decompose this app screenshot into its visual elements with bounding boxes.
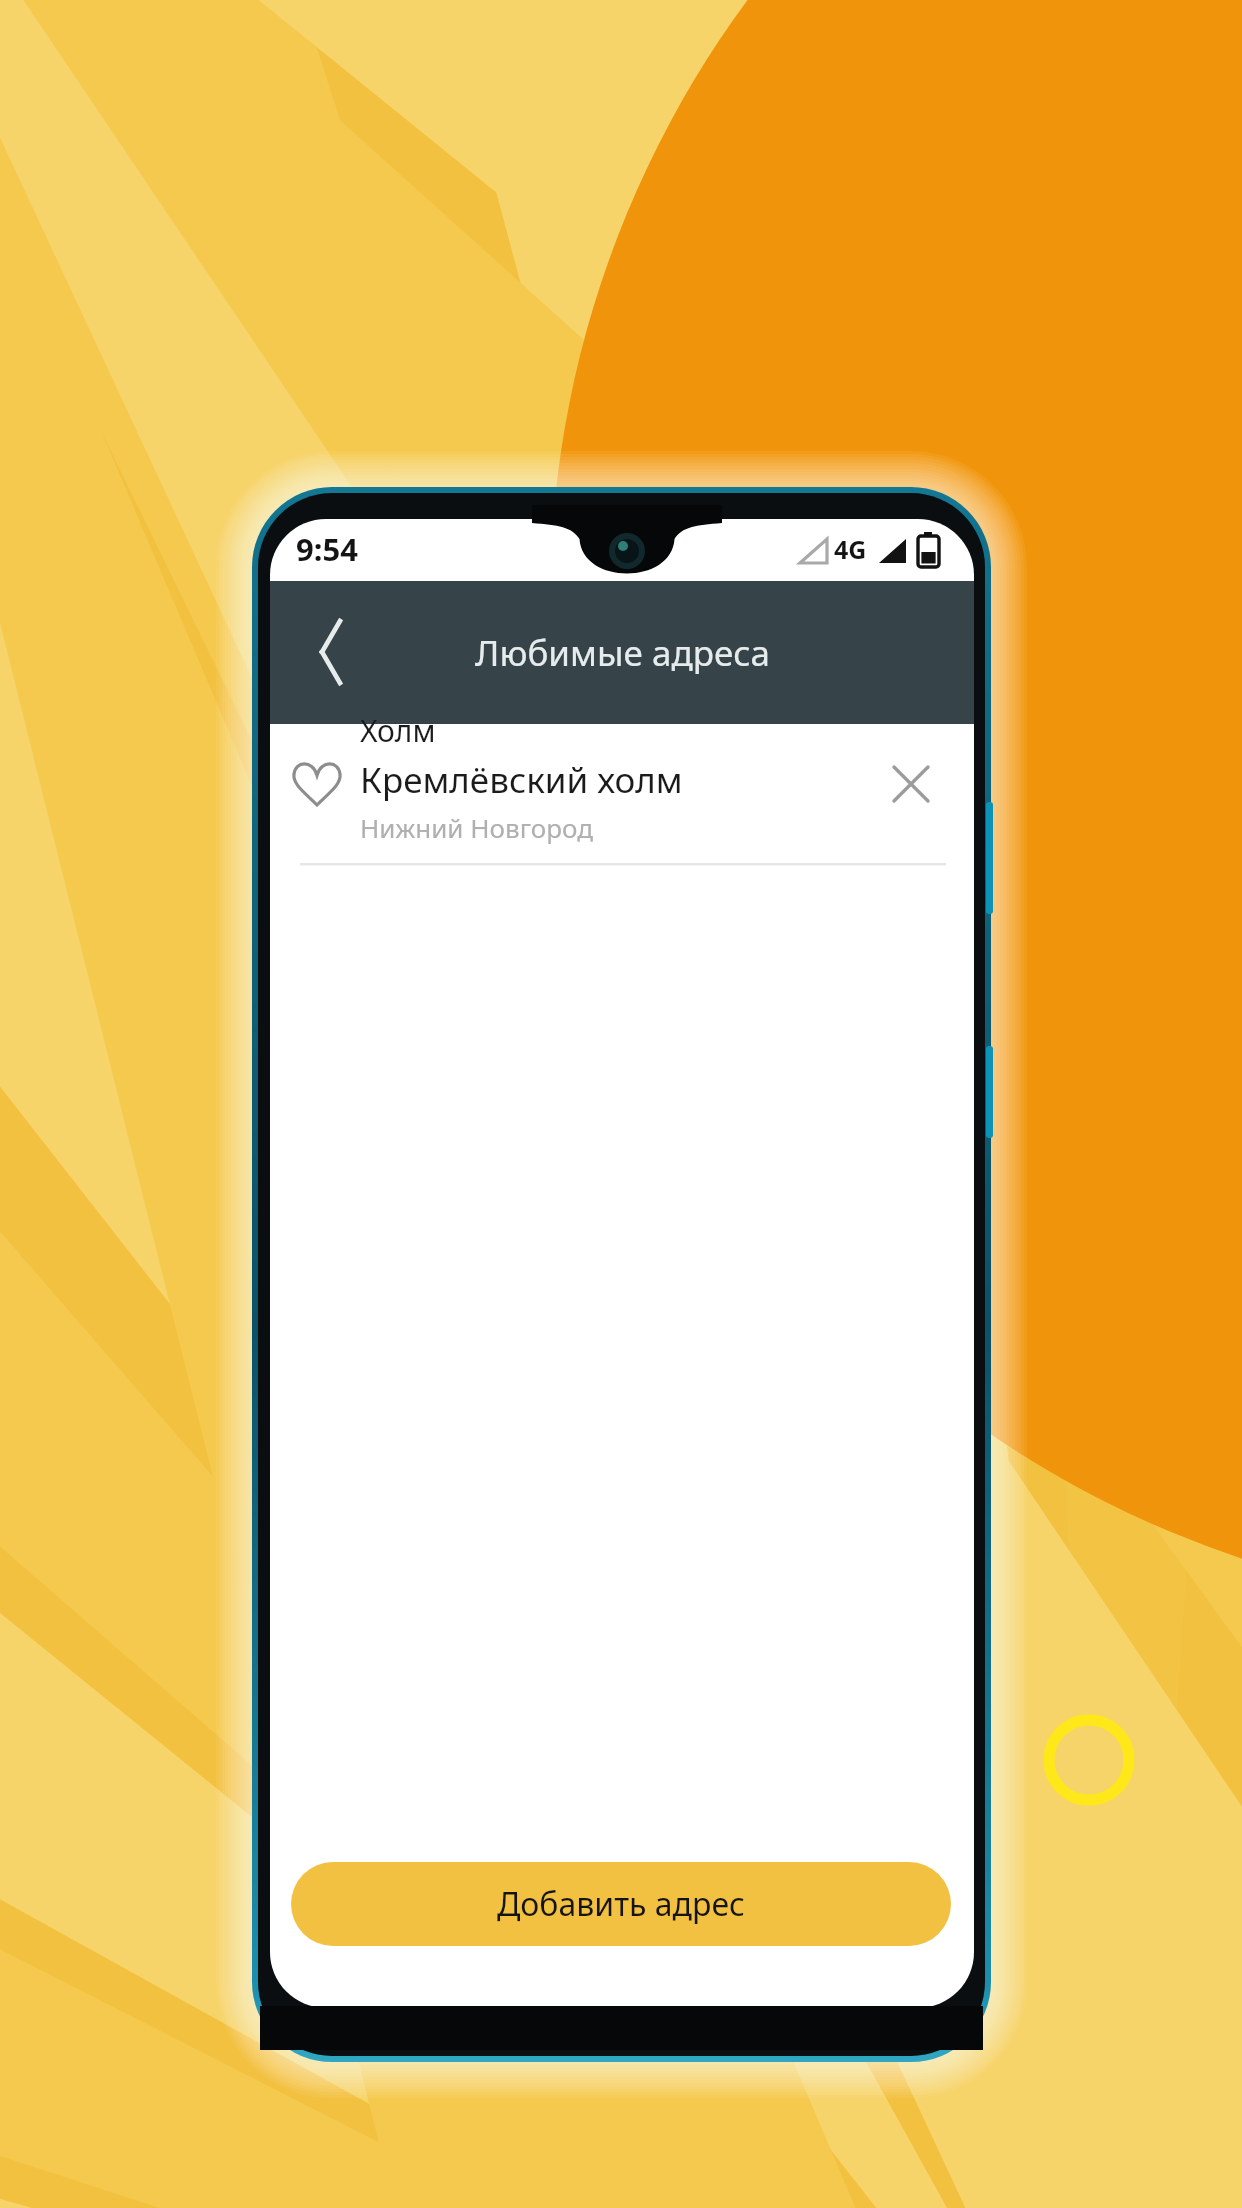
staticText: Добавить адрес: [497, 1882, 745, 1926]
staticText: Нижний Новгород: [360, 810, 593, 845]
staticText: 9:54: [296, 528, 358, 570]
button[interactable]: Back: [282, 572, 382, 672]
staticText: Холм: [360, 710, 436, 751]
staticText: Кремлёвский холм: [360, 756, 683, 804]
staticText: Любимые адреса: [475, 629, 770, 677]
staticText: 4G: [834, 532, 867, 566]
button[interactable]: [270, 704, 974, 862]
button[interactable]: Добавить адрес: [291, 1862, 951, 1946]
button[interactable]: Remove address: [868, 742, 956, 830]
